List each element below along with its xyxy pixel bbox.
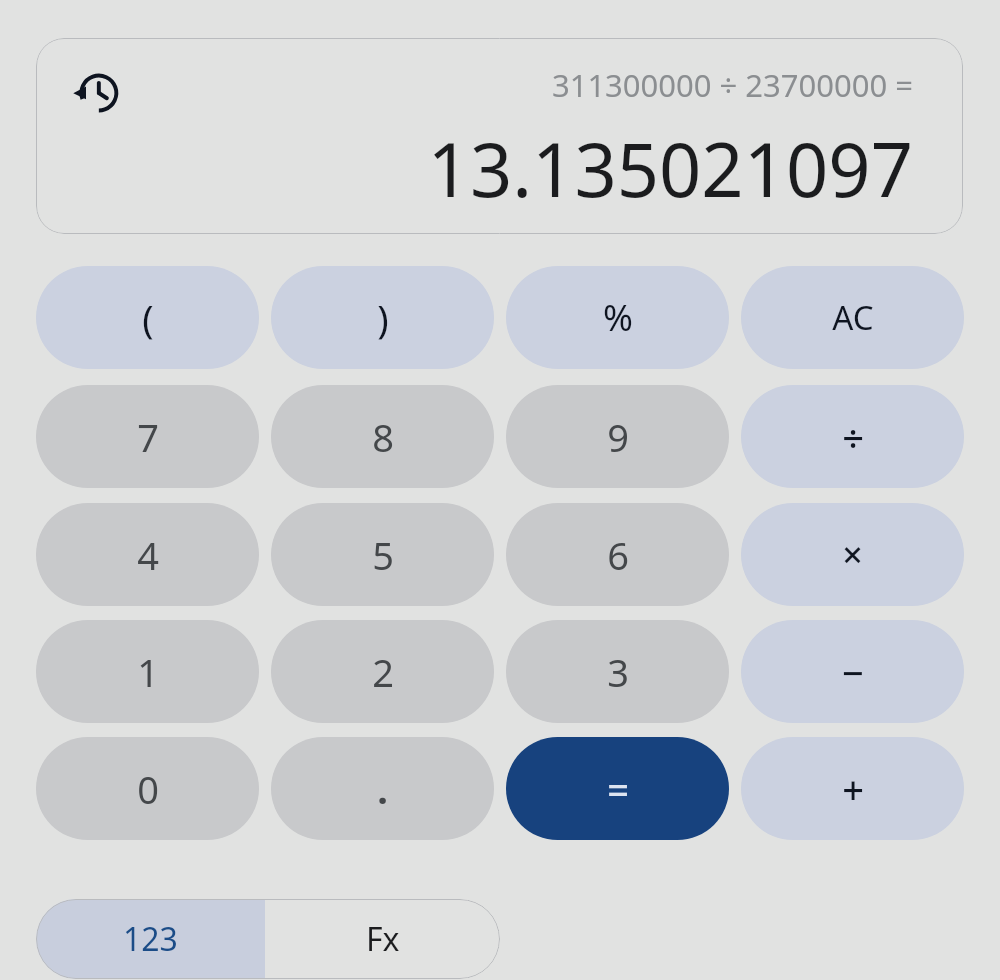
staticText: 4	[137, 529, 159, 581]
staticText: 2	[372, 646, 394, 698]
button[interactable]: AC	[741, 266, 964, 369]
staticText: 13.135021097	[427, 118, 913, 219]
button[interactable]: 9	[506, 385, 729, 488]
button[interactable]: .	[271, 737, 494, 840]
button[interactable]: =	[506, 737, 729, 840]
staticText: −	[842, 646, 864, 698]
staticText: =	[607, 763, 629, 815]
staticText: 5	[372, 529, 394, 581]
button[interactable]: 3	[506, 620, 729, 723]
staticText: 9	[607, 411, 629, 463]
button[interactable]: History	[36, 38, 963, 234]
button[interactable]: 0	[36, 737, 259, 840]
button[interactable]: Fx	[265, 899, 500, 979]
staticText: 1	[137, 646, 159, 698]
button[interactable]: −	[741, 620, 964, 723]
button[interactable]: 1	[36, 620, 259, 723]
button[interactable]: 4	[36, 503, 259, 606]
button[interactable]: 7	[36, 385, 259, 488]
button[interactable]: 123	[36, 899, 265, 979]
button[interactable]: History	[66, 62, 128, 124]
staticText: 0	[137, 763, 159, 815]
button[interactable]: %	[506, 266, 729, 369]
staticText: .	[377, 763, 388, 815]
staticText: 8	[372, 411, 394, 463]
staticText: 311300000 ÷ 23700000 =	[551, 64, 913, 106]
staticText: 123	[123, 917, 178, 961]
staticText: 7	[137, 411, 159, 463]
staticText: 6	[607, 529, 629, 581]
staticText: +	[842, 763, 864, 815]
button[interactable]: (	[36, 266, 259, 369]
staticText: %	[603, 293, 633, 342]
button[interactable]: +	[741, 737, 964, 840]
button[interactable]: ×	[741, 503, 964, 606]
button[interactable]: ÷	[741, 385, 964, 488]
staticText: 3	[607, 646, 629, 698]
button[interactable]: )	[271, 266, 494, 369]
button[interactable]: 6	[506, 503, 729, 606]
staticText: (	[142, 292, 154, 344]
button[interactable]: 8	[271, 385, 494, 488]
button[interactable]: 5	[271, 503, 494, 606]
staticText: AC	[832, 295, 874, 340]
staticText: ×	[842, 530, 863, 579]
staticText: Fx	[366, 917, 400, 961]
staticText: ÷	[842, 411, 864, 463]
button[interactable]: 2	[271, 620, 494, 723]
staticText: )	[377, 292, 389, 344]
